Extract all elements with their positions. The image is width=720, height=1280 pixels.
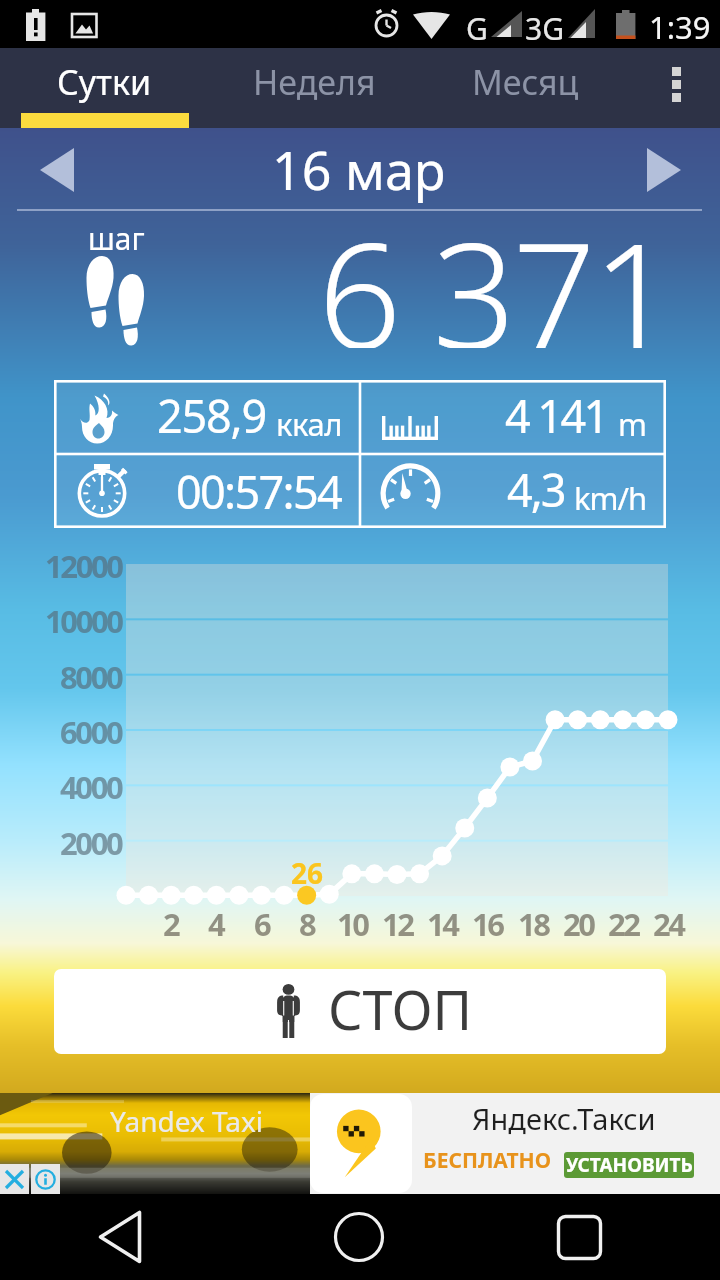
staticText: 8 — [299, 903, 315, 945]
button[interactable]: Сутки — [0, 48, 209, 128]
button[interactable]: Recent apps — [544, 1202, 614, 1272]
button[interactable] — [310, 1094, 412, 1193]
button[interactable]: Home — [324, 1202, 394, 1272]
staticText: 4,3 — [507, 459, 565, 520]
button[interactable]: 258,9 — [54, 380, 360, 454]
staticText: 22 — [608, 903, 639, 945]
button[interactable]: Back — [85, 1202, 155, 1272]
staticText: Неделя — [253, 59, 376, 105]
staticText: 14 — [427, 903, 458, 945]
button[interactable]: 4 141 — [360, 380, 666, 454]
staticText: km/h — [574, 477, 647, 519]
staticText: 6 — [254, 903, 270, 945]
staticText: 4000 — [60, 766, 122, 808]
staticText: 16 — [472, 903, 503, 945]
staticText: БЕСПЛАТНО — [423, 1146, 552, 1175]
staticText: 6 371 — [318, 193, 673, 348]
staticText: 10000 — [45, 600, 122, 642]
staticText: Сутки — [57, 59, 152, 105]
button[interactable]: Ad info — [31, 1164, 60, 1194]
staticText: 20 — [563, 903, 594, 945]
button[interactable]: 00:57:54 — [54, 454, 360, 528]
staticText: m — [618, 403, 647, 445]
staticText: Месяц — [472, 59, 579, 105]
staticText: 12000 — [45, 545, 122, 587]
staticText: 2000 — [60, 822, 122, 864]
staticText: G — [466, 8, 488, 49]
button[interactable]: Close ad — [0, 1164, 29, 1194]
button[interactable]: Previous day — [20, 141, 94, 199]
staticText: 1:39 — [649, 6, 711, 48]
staticText: 12 — [382, 903, 413, 945]
button[interactable]: More options — [630, 48, 720, 128]
staticText: УСТАНОВИТЬ — [566, 1152, 693, 1178]
staticText: 26 — [291, 854, 324, 892]
button[interactable]: УСТАНОВИТЬ — [564, 1152, 694, 1178]
staticText: 00:57:54 — [176, 461, 341, 522]
staticText: 8000 — [60, 656, 122, 698]
staticText: 3G — [525, 8, 564, 49]
staticText: ккал — [276, 403, 343, 445]
staticText: Yandex Taxi — [110, 1102, 264, 1140]
staticText: 2 — [163, 903, 179, 945]
staticText: 6000 — [60, 711, 122, 753]
button[interactable] — [0, 1093, 310, 1194]
staticText: СТОП — [328, 972, 473, 1046]
button[interactable]: Next day — [626, 141, 700, 199]
button[interactable]: Неделя — [209, 48, 420, 128]
staticText: Яндекс.Такси — [472, 1099, 656, 1138]
staticText: 10 — [337, 903, 368, 945]
button[interactable]: Месяц — [420, 48, 630, 128]
staticText: шаг — [88, 218, 145, 259]
button[interactable]: 4,3 — [360, 454, 666, 528]
staticText: 24 — [653, 903, 684, 945]
staticText: 4 141 — [505, 385, 607, 446]
staticText: 18 — [518, 903, 549, 945]
staticText: 258,9 — [157, 385, 267, 446]
staticText: 4 — [208, 903, 224, 945]
staticText: 16 мар — [272, 134, 446, 205]
button[interactable]: СТОП — [54, 969, 666, 1054]
